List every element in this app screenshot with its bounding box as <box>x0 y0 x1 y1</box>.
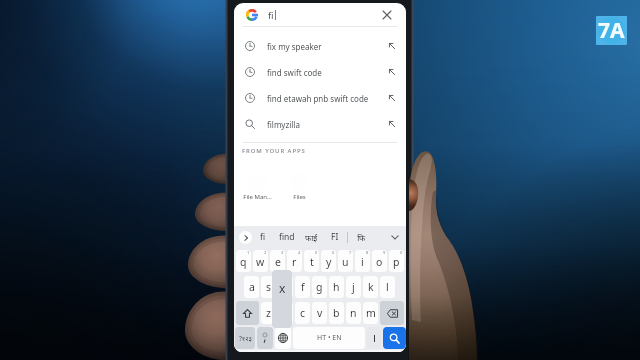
staticText: find swift code <box>267 67 322 78</box>
staticText: u <box>342 255 349 269</box>
staticText: fi <box>268 9 274 21</box>
staticText: find etawah pnb swift code <box>267 93 369 104</box>
staticText: y <box>326 255 332 269</box>
button[interactable]: j <box>346 276 361 298</box>
staticText: c <box>300 306 306 320</box>
button[interactable]: h <box>329 276 344 298</box>
staticText: q <box>240 255 247 269</box>
staticText: फि <box>357 232 366 243</box>
button[interactable]: find swift code <box>234 59 406 85</box>
staticText: ?१२३ <box>239 334 252 343</box>
staticText: 5 <box>315 250 318 255</box>
staticText: 0 <box>400 250 403 255</box>
button[interactable]: k <box>363 276 378 298</box>
button[interactable]: Expand suggestions <box>384 226 406 248</box>
staticText: j <box>352 280 355 294</box>
staticText: filmyzilla <box>267 119 300 130</box>
staticText: FROM YOUR APPS <box>242 147 306 155</box>
button[interactable]: s <box>261 276 276 298</box>
staticText: फाई <box>305 232 318 243</box>
staticText: 7 <box>349 250 352 255</box>
staticText: v <box>317 306 323 320</box>
staticText: g <box>316 280 323 294</box>
button[interactable]: Clear search <box>378 6 396 24</box>
staticText: z <box>266 306 271 320</box>
button[interactable]: m <box>363 302 378 324</box>
button[interactable]: More suggestions <box>239 231 252 244</box>
staticText: h <box>333 280 340 294</box>
other: Insert filmyzilla <box>388 120 396 128</box>
staticText: s <box>266 280 272 294</box>
other: Insert find etawah pnb swift code <box>388 94 396 102</box>
staticText: m <box>366 306 376 320</box>
button[interactable]: Space <box>293 327 365 349</box>
staticText: e <box>275 255 281 269</box>
button[interactable]: find etawah pnb swift code <box>234 85 406 111</box>
other: Insert find swift code <box>388 68 396 76</box>
staticText: r <box>292 255 297 269</box>
button[interactable]: Files <box>278 173 320 201</box>
staticText: f <box>301 280 305 294</box>
button[interactable]: g <box>312 276 327 298</box>
button[interactable]: Period <box>367 327 381 349</box>
button[interactable]: fi <box>252 226 274 248</box>
button[interactable]: Search <box>383 327 406 349</box>
staticText: p <box>393 255 400 269</box>
button[interactable]: z <box>261 302 276 324</box>
staticText: w <box>256 255 265 269</box>
staticText: 3 <box>281 250 284 255</box>
button[interactable]: b <box>329 302 344 324</box>
staticText: t <box>310 255 314 269</box>
staticText: find <box>279 231 295 243</box>
staticText: o <box>376 255 383 269</box>
staticText: l <box>386 280 389 294</box>
button[interactable]: n <box>346 302 361 324</box>
button[interactable]: p <box>389 250 404 272</box>
staticText: 8 <box>366 250 369 255</box>
button[interactable]: q <box>236 250 251 272</box>
button[interactable]: r <box>287 250 302 272</box>
staticText: HT • EN <box>317 333 342 343</box>
button[interactable]: Comma <box>257 327 273 349</box>
staticText: FI <box>331 231 339 243</box>
button[interactable]: File Man… <box>236 173 278 201</box>
button[interactable]: f <box>295 276 310 298</box>
button[interactable]: filmyzilla <box>234 111 406 137</box>
staticText: File Man… <box>243 193 272 201</box>
staticText: Files <box>293 193 306 201</box>
button[interactable]: Channel watermark <box>596 16 627 45</box>
button[interactable]: FI <box>323 226 347 248</box>
button[interactable]: Shift <box>236 301 259 325</box>
staticText: i <box>361 255 364 269</box>
button[interactable]: d <box>278 276 293 298</box>
staticText: 2 <box>264 250 267 255</box>
button[interactable]: ?१२३ <box>235 327 255 349</box>
button[interactable]: e <box>270 250 285 272</box>
button[interactable]: c <box>295 302 310 324</box>
staticText: a <box>249 280 255 294</box>
staticText: fix my speaker <box>267 41 322 52</box>
staticText: d <box>282 280 289 294</box>
staticText: 7A <box>598 16 625 45</box>
button[interactable]: y <box>321 250 336 272</box>
button[interactable]: Pressed key <box>272 270 292 328</box>
button[interactable]: i <box>355 250 370 272</box>
button[interactable]: w <box>253 250 268 272</box>
button[interactable]: फाई <box>299 226 323 248</box>
button[interactable]: u <box>338 250 353 272</box>
staticText: 1 <box>247 250 250 255</box>
button[interactable]: fix my speaker <box>234 33 406 59</box>
button[interactable]: फि <box>348 226 374 248</box>
button[interactable]: v <box>312 302 327 324</box>
button[interactable]: a <box>244 276 259 298</box>
button[interactable]: l <box>380 276 395 298</box>
button[interactable]: x <box>278 302 293 324</box>
button[interactable]: find <box>274 226 299 248</box>
button[interactable]: Change language <box>275 327 291 349</box>
staticText: fi <box>260 231 266 243</box>
staticText: k <box>368 280 374 294</box>
button[interactable]: t <box>304 250 319 272</box>
button[interactable]: Backspace <box>380 301 404 325</box>
button[interactable]: o <box>372 250 387 272</box>
